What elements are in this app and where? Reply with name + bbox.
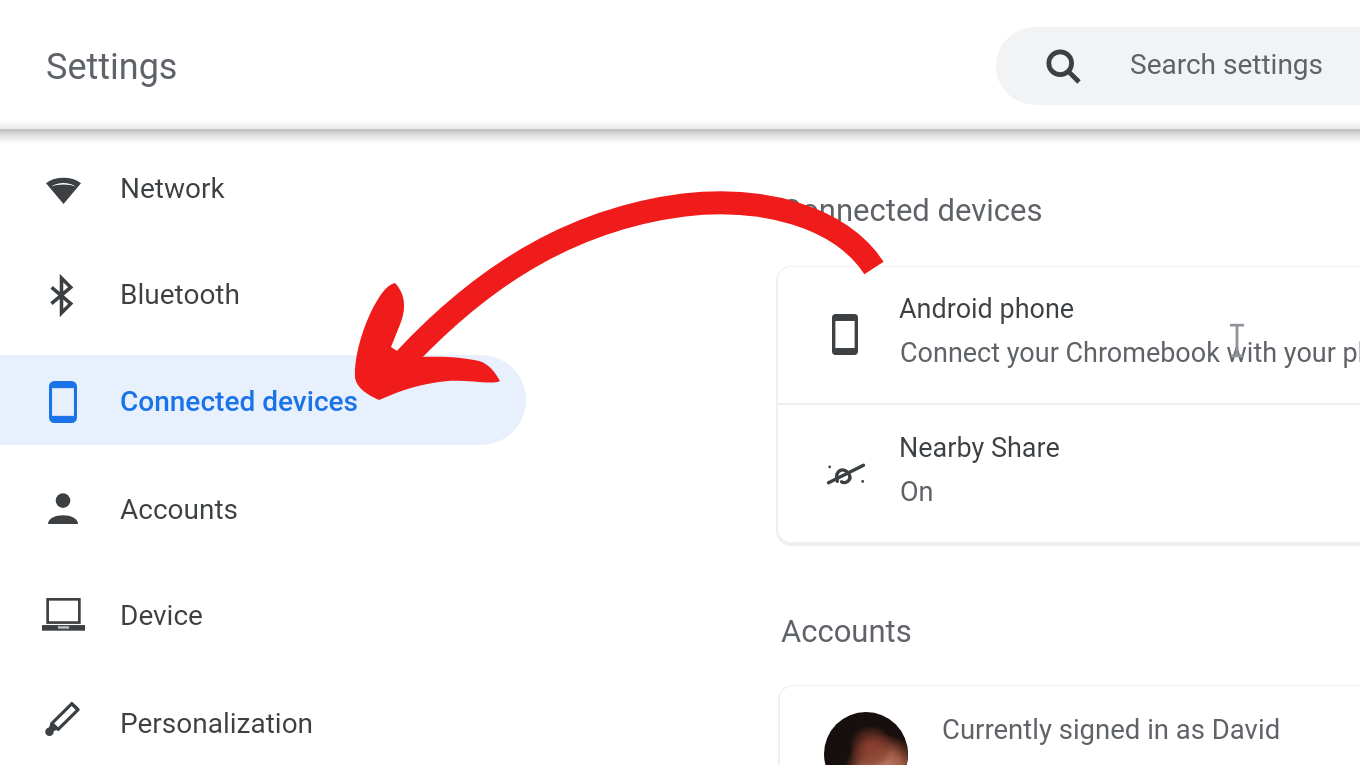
staticText: Personalization (120, 707, 314, 740)
button[interactable]: Device (0, 570, 528, 660)
staticText: Connected devices (120, 385, 359, 418)
staticText: Search settings (1130, 48, 1324, 81)
button[interactable]: Currently signed in as David (780, 686, 1360, 765)
button[interactable]: Bluetooth (0, 250, 528, 340)
staticText: Connect your Chromebook with your phone (900, 337, 1360, 369)
staticText: Bluetooth (120, 278, 240, 311)
staticText: Connected devices (781, 192, 1043, 228)
other: Search (1047, 50, 1080, 83)
staticText: Device (120, 599, 203, 632)
staticText: Accounts (781, 613, 912, 649)
button[interactable]: Nearby Share (778, 403, 1360, 542)
button[interactable]: Accounts (0, 465, 528, 555)
button[interactable]: Network (0, 145, 528, 235)
staticText: Android phone (899, 293, 1075, 325)
button[interactable]: Personalization (0, 677, 528, 765)
staticText: Network (120, 172, 225, 205)
staticText: Nearby Share (899, 432, 1060, 464)
staticText: On (900, 476, 934, 508)
staticText: Settings (46, 46, 178, 88)
staticText: Accounts (120, 493, 239, 526)
button[interactable]: Connected devices (0, 357, 528, 447)
button[interactable]: Search (996, 27, 1360, 105)
staticText: Currently signed in as David (942, 713, 1281, 745)
button[interactable]: Android phone (778, 267, 1360, 403)
